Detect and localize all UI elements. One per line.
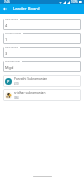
staticText: 384 (14, 96, 19, 100)
staticText: 1 (5, 37, 8, 42)
staticText: Mgd (5, 65, 14, 70)
staticText: sridhar subramanian (14, 91, 46, 95)
staticText: Leader Board (13, 6, 40, 12)
staticText: Total marks (5, 17, 19, 20)
staticText: 410 (14, 82, 19, 86)
staticText: Total marks (5, 45, 19, 48)
staticText: Selected user (5, 59, 21, 62)
button[interactable]: sridhar subramanian (3, 89, 81, 101)
button[interactable]: Back (0, 4, 10, 14)
staticText: P (7, 79, 10, 84)
staticText: 3 (5, 51, 8, 56)
staticText: Parvathi Subramanian (14, 77, 48, 81)
staticText: 100% (71, 0, 78, 4)
staticText: 7:46 (4, 0, 10, 4)
staticText: 4 (5, 23, 8, 28)
button[interactable]: P (3, 75, 81, 87)
staticText: Current marks (5, 31, 22, 34)
